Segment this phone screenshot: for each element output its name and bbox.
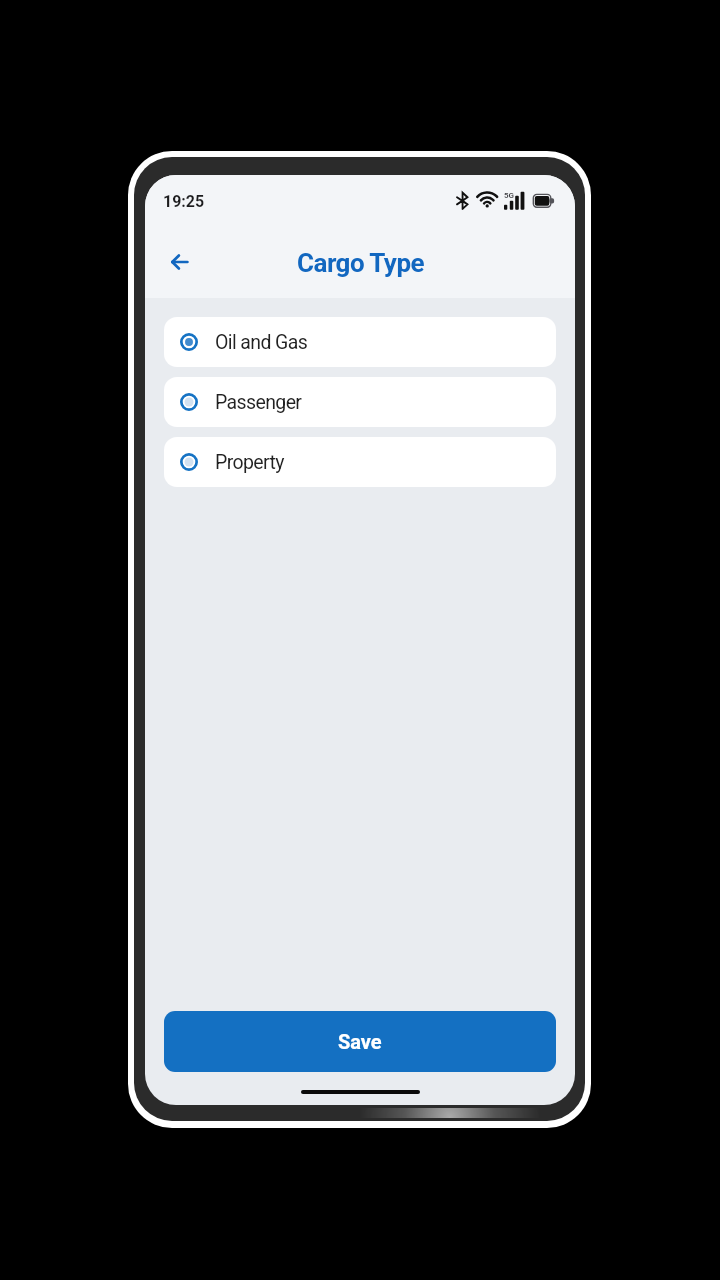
button[interactable]: Passenger — [164, 377, 556, 427]
staticText: 19:25 — [163, 192, 205, 211]
button[interactable]: Oil and Gas — [164, 317, 556, 367]
button[interactable]: Property — [164, 437, 556, 487]
button[interactable]: Save — [164, 1011, 556, 1072]
staticText: Oil and Gas — [215, 331, 308, 354]
staticText: Passenger — [215, 391, 302, 414]
staticText: Cargo Type — [297, 248, 424, 278]
staticText: Property — [215, 451, 284, 474]
button[interactable]: Back — [157, 240, 201, 284]
staticText: 5G — [504, 191, 515, 200]
staticText: Save — [338, 1030, 382, 1053]
